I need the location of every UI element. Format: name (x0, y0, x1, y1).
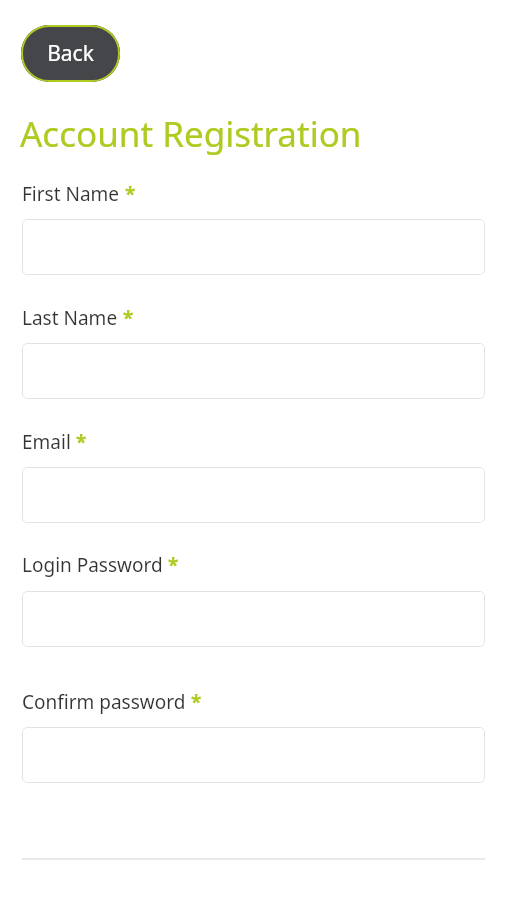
staticText: First Name (22, 181, 120, 207)
staticText: Email (22, 429, 71, 455)
staticText: Account Registration (20, 110, 362, 158)
button[interactable]: Email (22, 467, 485, 523)
staticText: Last Name (22, 305, 118, 331)
button[interactable]: Confirm password (22, 727, 485, 783)
staticText: * (163, 552, 179, 578)
staticText: Back (47, 39, 94, 68)
button[interactable]: Last Name (22, 343, 485, 399)
staticText: * (71, 429, 87, 455)
staticText: * (120, 181, 136, 207)
button[interactable]: Back (21, 25, 120, 82)
staticText: Login Password (22, 552, 163, 578)
staticText: * (118, 305, 134, 331)
staticText: Confirm password (22, 689, 186, 715)
staticText: * (186, 689, 202, 715)
button[interactable]: Login Password (22, 591, 485, 647)
button[interactable]: First Name (22, 219, 485, 275)
